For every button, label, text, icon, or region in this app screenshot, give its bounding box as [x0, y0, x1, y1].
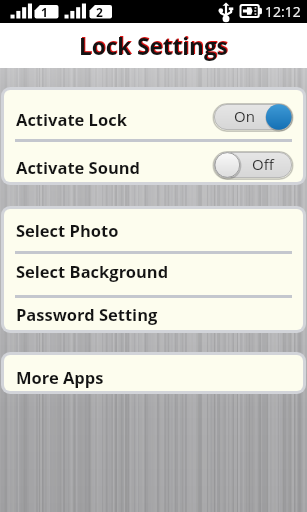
- button[interactable]: Activate Lock: [4, 90, 303, 139]
- staticText: 1: [41, 4, 48, 20]
- staticText: Off: [252, 154, 274, 174]
- staticText: 2: [96, 4, 103, 20]
- staticText: Select Background: [16, 260, 169, 282]
- button[interactable]: Select Background: [4, 254, 303, 295]
- staticText: Lock Settings: [79, 31, 228, 62]
- button[interactable]: More Apps: [4, 355, 303, 391]
- button[interactable]: Select Photo: [4, 209, 303, 251]
- button[interactable]: Password Setting: [4, 298, 303, 330]
- staticText: 12:12: [265, 2, 301, 21]
- staticText: Lock Settings: [80, 30, 229, 61]
- staticText: Password Setting: [16, 303, 158, 325]
- staticText: Select Photo: [16, 219, 119, 241]
- button[interactable]: Activate Sound: [4, 142, 303, 182]
- button[interactable]: Switch on: [214, 104, 292, 130]
- staticText: More Apps: [16, 366, 104, 388]
- staticText: Activate Lock: [16, 108, 127, 130]
- staticText: Activate Sound: [16, 156, 141, 178]
- button[interactable]: Switch off: [214, 152, 292, 178]
- staticText: On: [234, 106, 255, 126]
